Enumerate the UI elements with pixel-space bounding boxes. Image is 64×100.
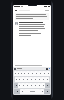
- button[interactable]: Key: [21, 77, 25, 82]
- button[interactable]: Key: [30, 71, 34, 76]
- button[interactable]: Key: [29, 83, 33, 88]
- button[interactable]: Key: [21, 83, 25, 88]
- button[interactable]: Key: [25, 83, 29, 88]
- button[interactable]: Key: [46, 71, 50, 76]
- button[interactable]: Key: [42, 71, 46, 76]
- button[interactable]: Key: [41, 77, 45, 82]
- button[interactable]: Key: [34, 71, 38, 76]
- button[interactable]: [15, 22, 49, 36]
- button[interactable]: [15, 9, 49, 12]
- button[interactable]: Key: [33, 77, 37, 82]
- button[interactable]: Key: [17, 71, 20, 76]
- button[interactable]: Key: [33, 83, 37, 88]
- button[interactable]: Key: [23, 71, 26, 76]
- button[interactable]: Key: [15, 77, 18, 82]
- button[interactable]: Backspace: [45, 83, 50, 88]
- button[interactable]: Key: [25, 77, 29, 82]
- button[interactable]: [15, 64, 49, 66]
- button[interactable]: Key: [18, 77, 21, 82]
- button[interactable]: [16, 14, 48, 19]
- button[interactable]: Key: [41, 83, 45, 88]
- button[interactable]: Enter: [44, 89, 50, 94]
- button[interactable]: Send: [46, 68, 48, 70]
- button[interactable]: Key: [18, 83, 21, 88]
- button[interactable]: Key: [20, 89, 24, 94]
- button[interactable]: Key: [29, 77, 33, 82]
- button[interactable]: Key: [45, 77, 49, 82]
- button[interactable]: Key: [37, 83, 41, 88]
- button[interactable]: Space: [24, 89, 40, 94]
- button[interactable]: Key: [20, 71, 23, 76]
- button[interactable]: Key: [37, 77, 41, 82]
- button[interactable]: Shift: [14, 83, 18, 88]
- button[interactable]: Key: [26, 71, 30, 76]
- button[interactable]: Key: [40, 89, 44, 94]
- button[interactable]: Key: [14, 71, 17, 76]
- button[interactable]: Key: [38, 71, 42, 76]
- button[interactable]: Symbols: [14, 89, 20, 94]
